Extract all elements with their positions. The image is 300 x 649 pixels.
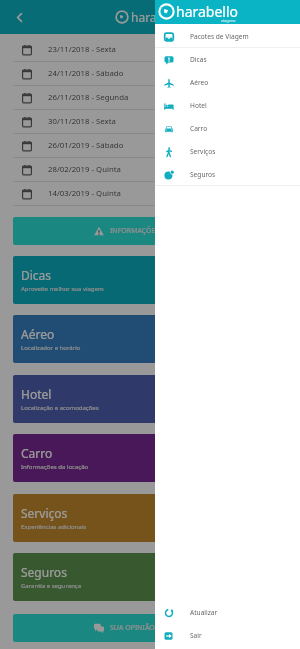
button[interactable]: 30/11/2018 - Sexta <box>13 110 287 133</box>
button[interactable]: Serviços <box>13 494 287 542</box>
button[interactable]: Dicas <box>155 48 300 71</box>
button[interactable]: Back <box>9 7 29 27</box>
staticText: 23/11/2018 - Sexta <box>48 44 116 55</box>
button[interactable]: 28/02/2019 - Quinta <box>13 158 287 181</box>
button[interactable]: Carro <box>13 434 287 482</box>
staticText: 14/03/2019 - Quinta <box>48 188 121 199</box>
staticText: Aéreo <box>21 326 55 342</box>
button[interactable]: 14/03/2019 - Quinta <box>13 182 287 205</box>
staticText: Seguros <box>190 170 216 179</box>
staticText: 26/01/2019 - Sábado <box>48 140 124 151</box>
staticText: 28/02/2019 - Quinta <box>48 164 121 175</box>
staticText: Localizador e horário <box>21 344 81 352</box>
button[interactable]: INFORMAÇÕES <box>13 217 287 245</box>
staticText: 30/11/2018 - Sexta <box>48 116 116 127</box>
staticText: Serviços <box>190 147 216 156</box>
staticText: Carro <box>190 124 208 133</box>
staticText: Sair <box>190 631 202 640</box>
staticText: INFORMAÇÕES <box>110 226 160 236</box>
staticText: harabello <box>131 9 185 25</box>
staticText: viagens <box>221 18 236 23</box>
staticText: Atualizar <box>190 608 218 617</box>
staticText: SUA OPINIÃO <box>110 623 155 633</box>
staticText: Pacotes de Viagem <box>190 32 249 41</box>
staticText: Dicas <box>21 267 52 283</box>
button[interactable]: Seguros <box>155 163 300 186</box>
staticText: Informações da locação <box>21 463 89 471</box>
button[interactable]: Serviços <box>155 140 300 163</box>
staticText: Dicas <box>190 55 207 64</box>
staticText: Hotel <box>21 386 52 402</box>
staticText: Garantia e segurança <box>21 582 82 590</box>
staticText: Aproveite melhor sua viagem <box>21 285 104 293</box>
staticText: 26/11/2018 - Segunda <box>48 92 129 103</box>
staticText: harabello <box>176 2 239 21</box>
button[interactable]: Hotel <box>155 94 300 117</box>
button[interactable]: Aéreo <box>13 315 287 363</box>
button[interactable]: SUA OPINIÃO <box>13 614 287 642</box>
button[interactable]: Carro <box>155 117 300 140</box>
button[interactable]: Aéreo <box>155 71 300 94</box>
staticText: Localização e acomodações <box>21 404 99 412</box>
staticText: Carro <box>21 445 53 461</box>
button[interactable]: 23/11/2018 - Sexta <box>13 38 287 61</box>
button[interactable]: Dicas <box>13 256 287 304</box>
staticText: Experiências adicionais <box>21 523 87 531</box>
button[interactable]: 24/11/2018 - Sábado <box>13 62 287 85</box>
button[interactable]: Sair <box>155 624 300 647</box>
button[interactable]: Hotel <box>13 375 287 423</box>
button[interactable]: 26/01/2019 - Sábado <box>13 134 287 157</box>
button[interactable]: Seguros <box>13 553 287 601</box>
button[interactable]: Pacotes de Viagem <box>155 25 300 48</box>
staticText: Seguros <box>21 564 67 580</box>
staticText: Hotel <box>190 101 207 110</box>
staticText: Aéreo <box>190 78 209 87</box>
staticText: Serviços <box>21 505 68 521</box>
button[interactable]: Atualizar <box>155 601 300 624</box>
button[interactable]: 26/11/2018 - Segunda <box>13 86 287 109</box>
staticText: 24/11/2018 - Sábado <box>48 68 124 79</box>
